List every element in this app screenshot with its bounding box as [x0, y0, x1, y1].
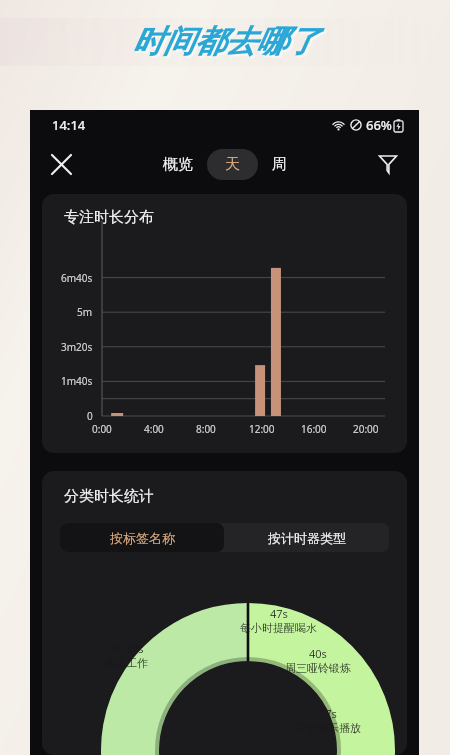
staticText: 分类时长统计 [64, 487, 154, 506]
button[interactable]: 周 [261, 149, 298, 180]
staticText: 0:00 [92, 422, 112, 436]
staticText: 每小时提醒喝水 [240, 621, 317, 635]
button[interactable]: Filter [367, 143, 409, 185]
staticText: 66% [366, 116, 392, 134]
staticText: 专注时长分布 [64, 208, 154, 227]
button[interactable]: 概览 [152, 149, 204, 180]
staticText: 12:00 [249, 422, 275, 436]
staticText: 14:14 [52, 116, 86, 134]
staticText: 1m40s [61, 374, 93, 388]
staticText: 0 [87, 409, 93, 423]
staticText: 3m37s [109, 641, 144, 656]
staticText: 时间都去哪了 [132, 22, 318, 61]
staticText: 概览 [163, 155, 193, 174]
staticText: 天 [225, 155, 240, 174]
staticText: 57s [319, 706, 337, 721]
button[interactable]: 按标签名称 [60, 523, 224, 552]
staticText: 时间都去哪了 [134, 24, 320, 63]
staticText: 背景音乐播放 [295, 721, 361, 735]
staticText: 3m20s [61, 340, 93, 354]
staticText: 40s [309, 646, 327, 661]
staticText: 6m40s [61, 271, 93, 285]
staticText: 16:00 [301, 422, 327, 436]
staticText: 番茄工作 [104, 656, 148, 670]
staticText: 47s [270, 606, 288, 621]
staticText: 4:00 [144, 422, 164, 436]
button[interactable]: 天 [207, 149, 258, 180]
staticText: 按标签名称 [110, 530, 175, 546]
staticText: 按计时器类型 [268, 530, 346, 546]
button[interactable]: 按计时器类型 [224, 523, 389, 552]
button[interactable]: Close [40, 143, 82, 185]
staticText: 5m [77, 305, 93, 319]
staticText: 8:00 [196, 422, 216, 436]
staticText: 周 [272, 155, 287, 174]
staticText: 20:00 [353, 422, 379, 436]
staticText: 周三哑铃锻炼 [285, 661, 351, 675]
